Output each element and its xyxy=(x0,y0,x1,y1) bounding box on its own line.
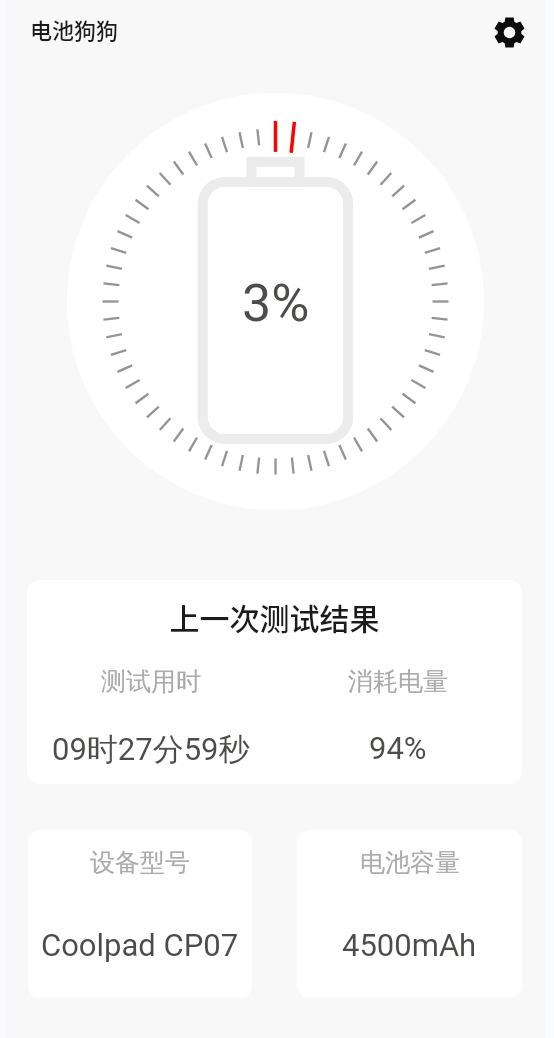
staticText: 设备型号 xyxy=(90,847,190,878)
staticText: 4500mAh xyxy=(342,927,477,963)
staticText: 消耗电量 xyxy=(348,666,448,697)
staticText: Coolpad CP07 xyxy=(41,927,239,963)
staticText: 上一次测试结果 xyxy=(27,595,522,638)
button[interactable]: 上一次测试结果 xyxy=(27,580,522,784)
staticText: 94% xyxy=(369,730,427,766)
staticText: 3% xyxy=(242,273,310,334)
staticText: 测试用时 xyxy=(101,666,201,697)
button[interactable]: 设备型号 xyxy=(28,830,252,998)
staticText: 09时27分59秒 xyxy=(52,730,250,769)
button[interactable]: 电池容量 xyxy=(297,830,522,998)
staticText: 电池狗狗 xyxy=(30,13,119,45)
staticText: 电池容量 xyxy=(360,847,460,878)
button[interactable]: Settings xyxy=(488,11,530,53)
